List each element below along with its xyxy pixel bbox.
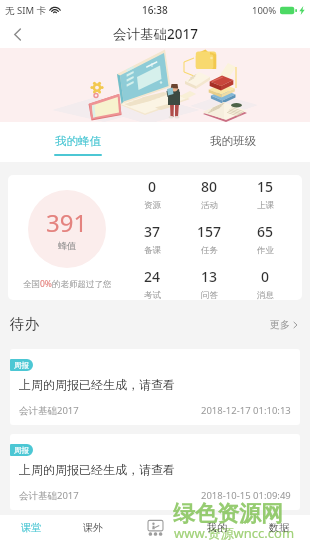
staticText: 15	[257, 177, 274, 196]
staticText: 问答	[201, 290, 218, 300]
staticText: 全国	[23, 279, 40, 290]
staticText: 蜂值	[58, 240, 76, 251]
staticText: 2018-12-17 01:10:13	[201, 404, 291, 417]
staticText: 上周的周报已经生成，请查看	[19, 377, 175, 392]
staticText: 16:38	[142, 3, 168, 17]
staticText: 会计基础2017	[113, 25, 198, 43]
staticText: 2018-10-15 01:09:49	[201, 489, 291, 502]
button[interactable]: 0	[124, 177, 181, 211]
staticText: 消息	[257, 290, 274, 300]
button[interactable]: 我的蜂值	[0, 122, 155, 162]
staticText: 周报	[14, 361, 29, 370]
button[interactable]: 157	[181, 222, 237, 256]
staticText: 课外	[83, 521, 103, 534]
button[interactable]: 课堂	[0, 515, 62, 539]
button[interactable]: 我的班级	[155, 122, 310, 162]
staticText: 更多	[270, 318, 290, 331]
button[interactable]: 0	[237, 267, 293, 300]
staticText: 391	[46, 206, 88, 239]
button[interactable]: 13	[181, 267, 237, 300]
button[interactable]: 数据	[248, 515, 310, 539]
staticText: 0	[148, 177, 157, 196]
button[interactable]: 周报	[10, 434, 300, 510]
staticText: 我的	[207, 521, 227, 534]
staticText: 37	[144, 222, 161, 241]
button[interactable]: 我的	[186, 515, 248, 539]
staticText: 会计基础2017	[19, 489, 79, 502]
staticText: 绿色资源网	[173, 500, 283, 528]
staticText: 0%	[40, 278, 52, 290]
button[interactable]: 周报	[10, 349, 300, 425]
button[interactable]: 更多	[266, 314, 302, 335]
staticText: 13	[201, 267, 218, 286]
staticText: 数据	[269, 521, 289, 534]
button[interactable]: 24	[124, 267, 181, 300]
staticText: 无 SIM 卡	[5, 4, 46, 17]
staticText: 待办	[10, 315, 39, 333]
staticText: 课堂	[21, 521, 41, 534]
staticText: www.资源wncc.com	[174, 524, 295, 542]
staticText: 考试	[144, 290, 161, 300]
staticText: 周报	[14, 446, 29, 455]
button[interactable]: 课程	[124, 515, 186, 539]
staticText: 我的蜂值	[55, 134, 101, 148]
button[interactable]: 65	[237, 222, 293, 256]
staticText: 活动	[201, 200, 218, 211]
button[interactable]: 课外	[62, 515, 124, 539]
staticText: 24	[144, 267, 161, 286]
staticText: 备课	[144, 245, 161, 256]
button[interactable]: 37	[124, 222, 181, 256]
staticText: 的老师超过了您	[52, 279, 112, 290]
staticText: 作业	[257, 245, 274, 256]
staticText: 157	[197, 222, 222, 241]
staticText: 65	[257, 222, 274, 241]
staticText: 我的班级	[210, 134, 256, 148]
button[interactable]: 80	[181, 177, 237, 211]
staticText: 80	[201, 177, 218, 196]
staticText: 上课	[257, 200, 274, 211]
staticText: 资源	[144, 200, 161, 211]
staticText: 上周的周报已经生成，请查看	[19, 462, 175, 477]
staticText: 100%	[252, 4, 277, 17]
button[interactable]: 15	[237, 177, 293, 211]
staticText: 任务	[201, 245, 218, 256]
button[interactable]: Back	[0, 20, 34, 48]
staticText: 0	[261, 267, 270, 286]
staticText: 会计基础2017	[19, 404, 79, 417]
